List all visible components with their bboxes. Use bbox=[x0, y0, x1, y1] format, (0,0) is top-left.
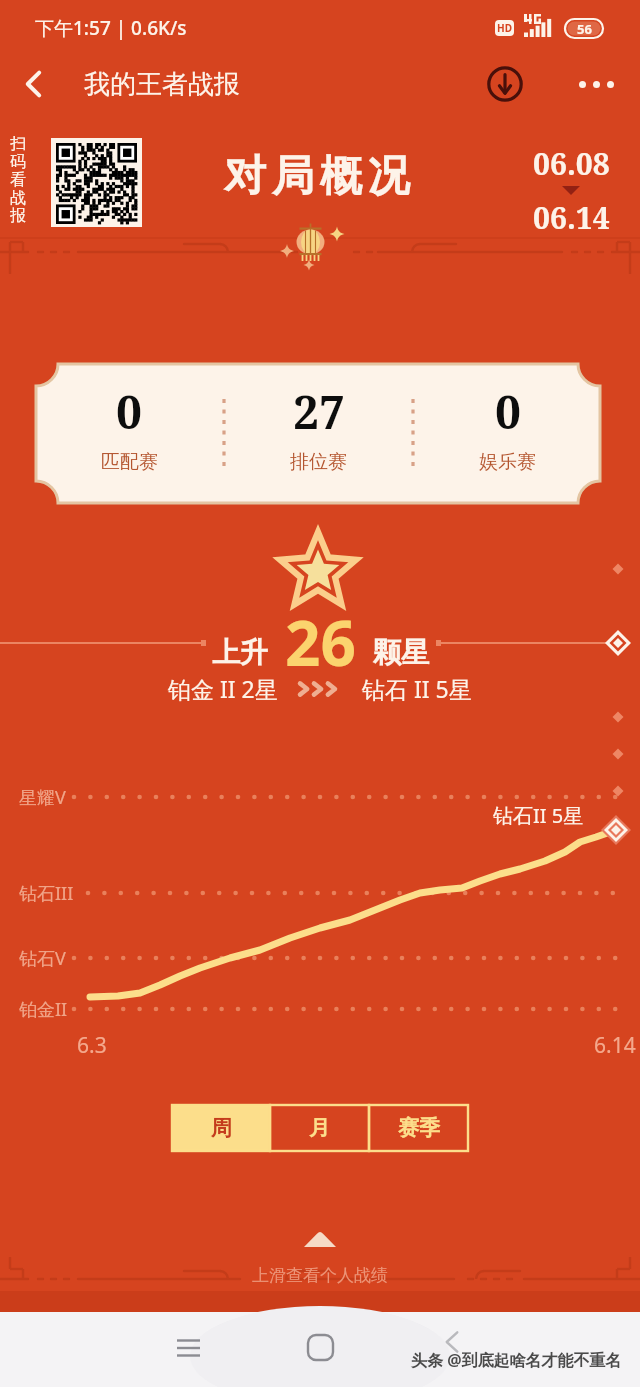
staticText: 6.3 bbox=[77, 1031, 107, 1060]
button[interactable]: Home bbox=[294, 1321, 346, 1373]
button[interactable]: Back bbox=[8, 58, 60, 110]
staticText: 星耀V bbox=[19, 785, 66, 810]
staticText: 赛季 bbox=[398, 1115, 440, 1141]
button[interactable]: 0 bbox=[415, 364, 600, 503]
button[interactable]: 0 bbox=[36, 364, 222, 503]
staticText: 战 bbox=[10, 188, 26, 206]
staticText: 码 bbox=[10, 152, 26, 170]
staticText: 我的王者战报 bbox=[84, 68, 240, 101]
button[interactable]: Recent apps bbox=[162, 1322, 214, 1374]
staticText: 06.14 bbox=[533, 197, 610, 238]
staticText: 6.14 bbox=[594, 1031, 636, 1060]
staticText: 下午1:57 | 0.6K/s bbox=[35, 15, 187, 41]
button[interactable]: Download bbox=[479, 58, 531, 110]
staticText: 周 bbox=[211, 1115, 232, 1141]
staticText: 0 bbox=[495, 380, 521, 443]
staticText: 排位赛 bbox=[290, 450, 347, 474]
button[interactable]: 27 bbox=[226, 364, 411, 503]
staticText: 扫 bbox=[10, 134, 26, 152]
staticText: 0 bbox=[116, 380, 142, 443]
button[interactable]: 月 bbox=[270, 1105, 369, 1151]
staticText: 上滑查看个人战绩 bbox=[252, 1265, 388, 1286]
staticText: 看 bbox=[10, 170, 26, 188]
staticText: 上升 bbox=[212, 635, 268, 670]
staticText: 27 bbox=[293, 380, 345, 443]
staticText: 颗星 bbox=[373, 635, 429, 670]
button[interactable]: Back bbox=[430, 1320, 474, 1364]
staticText: 06.08 bbox=[533, 143, 610, 184]
staticText: 娱乐赛 bbox=[479, 450, 536, 474]
staticText: 头条 @到底起啥名才能不重名 bbox=[411, 1349, 622, 1371]
staticText: HD bbox=[497, 21, 512, 35]
staticText: 钻石II 5星 bbox=[493, 802, 584, 829]
staticText: 铂金II bbox=[19, 997, 68, 1022]
staticText: 钻石III bbox=[19, 881, 74, 906]
staticText: 钻石 II 5星 bbox=[362, 673, 472, 704]
staticText: 铂金 II 2星 bbox=[168, 673, 278, 704]
button[interactable]: 赛季 bbox=[369, 1105, 468, 1151]
staticText: 月 bbox=[309, 1115, 330, 1141]
staticText: 钻石V bbox=[19, 946, 66, 971]
button[interactable]: 周 bbox=[172, 1105, 270, 1151]
staticText: 匹配赛 bbox=[101, 450, 158, 474]
staticText: 报 bbox=[10, 206, 26, 224]
staticText: 56 bbox=[577, 20, 592, 38]
button[interactable]: More options bbox=[568, 56, 624, 112]
staticText: 对局概况 bbox=[221, 150, 413, 203]
staticText: 26 bbox=[285, 600, 356, 684]
